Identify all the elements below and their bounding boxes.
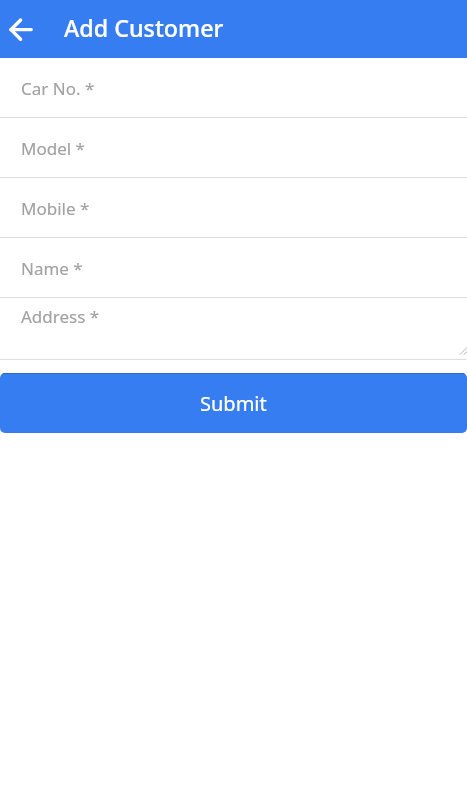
- button[interactable]: Car No. *: [0, 58, 467, 117]
- button[interactable]: Submit: [0, 373, 467, 433]
- button[interactable]: Name *: [0, 238, 467, 297]
- button[interactable]: Mobile *: [0, 178, 467, 237]
- staticText: Address *: [21, 305, 100, 328]
- staticText: Add Customer: [64, 12, 224, 44]
- staticText: Mobile *: [21, 197, 90, 220]
- staticText: Model *: [21, 137, 85, 160]
- button[interactable]: Back: [0, 10, 42, 48]
- staticText: Name *: [21, 257, 83, 280]
- staticText: Submit: [200, 390, 267, 417]
- staticText: Car No. *: [21, 77, 95, 100]
- button[interactable]: Model *: [0, 118, 467, 177]
- button[interactable]: Address *: [0, 298, 467, 359]
